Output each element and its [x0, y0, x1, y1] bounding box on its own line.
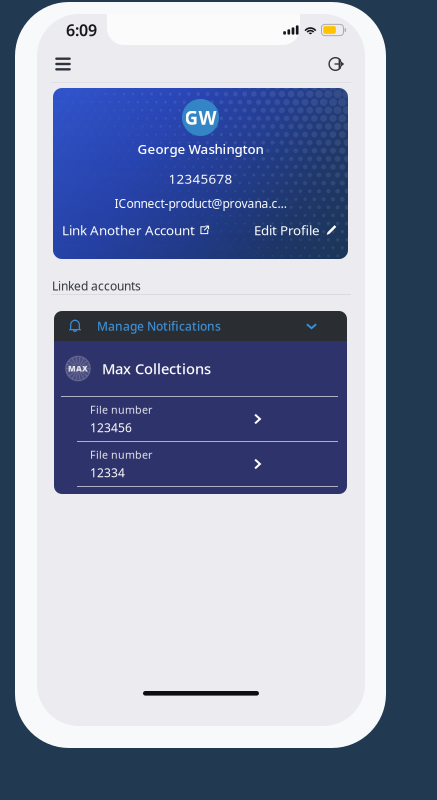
button[interactable]: Manage Notifications [54, 311, 347, 341]
staticText: 123456 [90, 420, 132, 435]
staticText: 12334 [90, 465, 125, 480]
staticText: Edit Profile [254, 221, 320, 239]
staticText: Linked accounts [52, 278, 141, 294]
button[interactable]: File number [54, 397, 347, 441]
staticText: File number [90, 402, 152, 417]
button[interactable]: File number [54, 442, 347, 486]
staticText: 12345678 [168, 170, 232, 187]
button[interactable]: Log out [318, 48, 354, 80]
staticText: IConnect-product@provana.c… [114, 195, 286, 211]
staticText: GW [184, 105, 216, 130]
button[interactable]: Link Another Account [62, 216, 209, 244]
staticText: Link Another Account [62, 221, 195, 239]
button[interactable]: Menu [45, 48, 81, 80]
staticText: Manage Notifications [97, 318, 221, 334]
staticText: George Washington [137, 140, 263, 158]
staticText: 6:09 [66, 19, 97, 41]
staticText: File number [90, 447, 152, 462]
button[interactable]: Edit Profile [254, 216, 337, 244]
staticText: MAX [68, 363, 88, 374]
staticText: Max Collections [102, 359, 211, 378]
